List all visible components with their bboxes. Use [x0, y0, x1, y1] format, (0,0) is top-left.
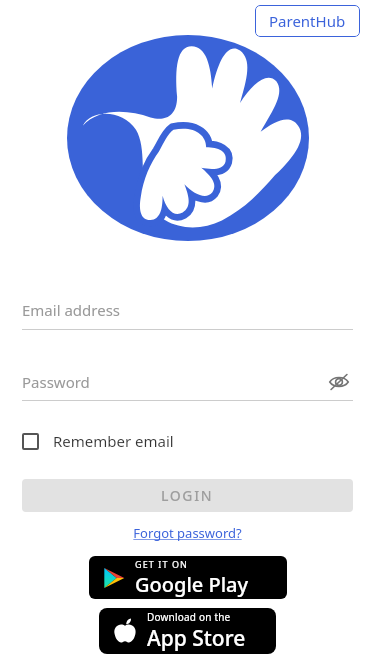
- button[interactable]: Show password: [325, 368, 353, 396]
- staticText: GET IT ON: [135, 558, 189, 570]
- button[interactable]: Remember email: [22, 427, 174, 455]
- staticText: LOGIN: [161, 486, 214, 505]
- staticText: App Store: [147, 624, 246, 653]
- staticText: Forgot password?: [133, 524, 242, 542]
- staticText: Password: [22, 372, 325, 392]
- button[interactable]: ParentHub: [255, 5, 360, 37]
- button[interactable]: Get it on Google Play: [89, 556, 287, 599]
- button[interactable]: Download on the App Store: [99, 608, 276, 654]
- staticText: Download on the: [147, 610, 231, 624]
- button[interactable]: Email address: [22, 300, 353, 330]
- button[interactable]: Forgot password?: [127, 522, 248, 544]
- staticText: Google Play: [135, 571, 249, 598]
- staticText: Remember email: [53, 431, 174, 451]
- button[interactable]: LOGIN: [22, 479, 353, 512]
- button[interactable]: Password: [22, 368, 353, 401]
- staticText: Email address: [22, 300, 121, 320]
- staticText: ParentHub: [269, 11, 346, 31]
